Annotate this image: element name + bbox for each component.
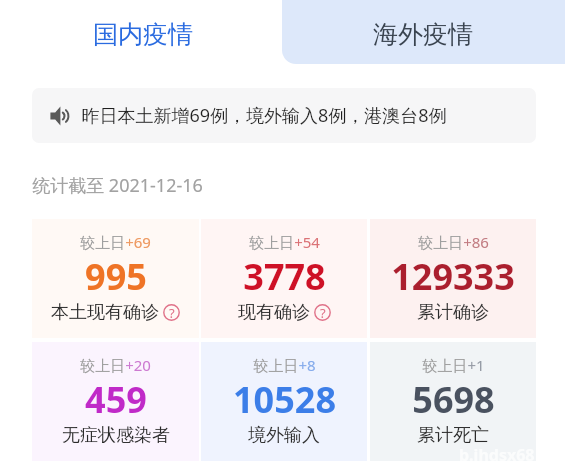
staticText: 现有确诊 xyxy=(238,301,310,324)
button[interactable]: 较上日+69 xyxy=(32,219,199,338)
staticText: b.jhdsx68 xyxy=(459,444,535,466)
staticText: 海外疫情 xyxy=(373,19,473,50)
staticText: 10528 xyxy=(233,375,336,424)
staticText: 境外输入 xyxy=(248,424,320,447)
staticText: 较上日+20 xyxy=(80,355,151,375)
staticText: 3778 xyxy=(243,252,326,301)
staticText: 累计确诊 xyxy=(417,301,489,324)
button[interactable]: Announcement xyxy=(32,88,536,143)
staticText: 国内疫情 xyxy=(93,19,193,50)
other: Help xyxy=(314,304,331,321)
staticText: 统计截至 2021-12-16 xyxy=(32,173,203,198)
staticText: 459 xyxy=(85,375,147,424)
staticText: 较上日+86 xyxy=(418,232,489,252)
staticText: 无症状感染者 xyxy=(62,424,170,447)
staticText: 昨日本土新增69例，境外输入8例，港澳台8例 xyxy=(81,103,447,128)
staticText: 累计死亡 xyxy=(417,424,489,447)
staticText: 较上日+69 xyxy=(80,232,151,252)
other: Help xyxy=(163,304,180,321)
staticText: 较上日+8 xyxy=(253,355,316,375)
button[interactable]: 较上日+20 xyxy=(32,342,199,461)
button[interactable]: 较上日+86 xyxy=(370,219,536,338)
button[interactable]: 较上日+8 xyxy=(201,342,367,461)
button[interactable]: 较上日+54 xyxy=(201,219,367,338)
staticText: ? xyxy=(320,304,326,321)
staticText: ? xyxy=(169,304,175,321)
button[interactable]: 国内疫情 xyxy=(0,0,282,64)
staticText: 较上日+54 xyxy=(249,232,320,252)
staticText: 995 xyxy=(85,252,147,301)
button[interactable]: 较上日+1 xyxy=(370,342,536,461)
staticText: 较上日+1 xyxy=(422,355,485,375)
other: Announcement xyxy=(50,106,70,126)
staticText: 5698 xyxy=(412,375,495,424)
staticText: 本土现有确诊 xyxy=(51,301,159,324)
staticText: 129333 xyxy=(391,252,515,301)
button[interactable]: 海外疫情 xyxy=(282,0,565,64)
